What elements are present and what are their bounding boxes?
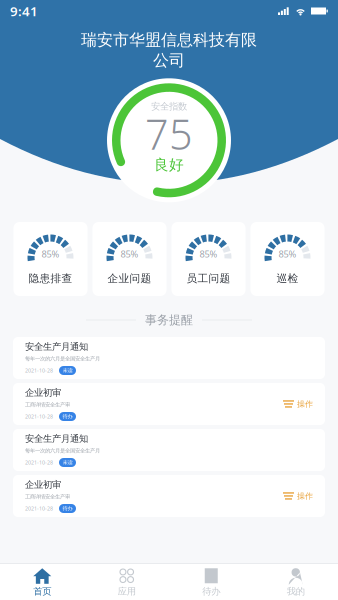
staticText: 2021-10-28: [25, 367, 53, 374]
staticText: 85%: [120, 248, 138, 260]
staticText: 瑞安市华盟信息科技有限: [81, 30, 257, 50]
staticText: 2021-10-28: [25, 413, 53, 420]
staticText: 85%: [41, 248, 59, 260]
staticText: 未读: [62, 459, 72, 466]
staticText: 我的: [287, 586, 305, 597]
staticText: 每年一次的六月是全国安全生产月: [25, 447, 100, 454]
staticText: 操作: [297, 399, 313, 409]
staticText: 安全生产月通知: [25, 433, 88, 444]
button[interactable]: 安全生产月通知: [13, 429, 325, 471]
staticText: 企业初审: [25, 479, 61, 490]
staticText: 85%: [199, 248, 217, 260]
staticText: 待办: [202, 586, 220, 597]
staticText: 企业问题: [107, 272, 151, 285]
staticText: 巡检: [276, 272, 298, 285]
staticText: 2021-10-28: [25, 459, 53, 466]
staticText: 操作: [297, 491, 313, 501]
staticText: 隐患排查: [28, 272, 72, 285]
staticText: 安全指数: [151, 101, 187, 112]
button[interactable]: 待办: [169, 564, 253, 600]
staticText: 安全生产月通知: [25, 341, 88, 352]
staticText: 良好: [154, 156, 184, 174]
button[interactable]: 企业初审: [13, 475, 325, 517]
staticText: 工商详情安全生产审: [25, 401, 70, 408]
staticText: 员工问题: [186, 272, 230, 285]
button[interactable]: 85%: [250, 222, 324, 296]
staticText: 工商详情安全生产审: [25, 493, 70, 500]
button[interactable]: 应用: [84, 564, 169, 600]
staticText: 应用: [118, 586, 136, 597]
button[interactable]: 85%: [171, 222, 245, 296]
button[interactable]: 企业初审: [13, 383, 325, 425]
staticText: 首页: [33, 586, 51, 597]
button[interactable]: 我的: [253, 564, 338, 600]
staticText: 待办: [62, 413, 72, 420]
staticText: 企业初审: [25, 387, 61, 398]
staticText: 每年一次的六月是全国安全生产月: [25, 355, 100, 362]
staticText: 公司: [153, 51, 185, 70]
staticText: 75: [145, 106, 193, 161]
staticText: 事务提醒: [145, 313, 193, 327]
staticText: 9:41: [10, 2, 38, 20]
staticText: 待办: [62, 505, 72, 512]
staticText: 2021-10-28: [25, 505, 53, 512]
button[interactable]: 安全生产月通知: [13, 337, 325, 379]
button[interactable]: 85%: [13, 222, 87, 296]
staticText: 85%: [278, 248, 296, 260]
button[interactable]: 85%: [92, 222, 166, 296]
staticText: 未读: [62, 367, 72, 374]
button[interactable]: 首页: [0, 564, 84, 600]
